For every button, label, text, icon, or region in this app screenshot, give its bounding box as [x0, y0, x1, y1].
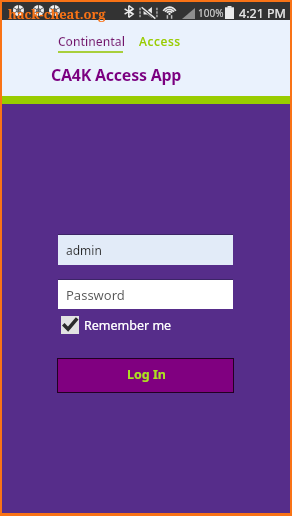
button[interactable]: Log In [57, 358, 234, 393]
staticText: Continental [58, 33, 125, 49]
staticText: Access [139, 33, 181, 49]
button[interactable]: Password [58, 280, 233, 309]
staticText: 100% [198, 6, 224, 20]
button[interactable]: Access [135, 28, 185, 54]
staticText: Log In [127, 366, 166, 383]
staticText: CA4K Access App [51, 64, 182, 86]
staticText: hack-cheat.org [8, 5, 106, 23]
staticText: Password [66, 286, 125, 304]
staticText: Remember me [84, 317, 172, 334]
button[interactable]: admin [58, 235, 233, 265]
staticText: admin [66, 242, 102, 258]
button[interactable]: Continental [54, 28, 129, 54]
button[interactable]: Remember me [61, 314, 172, 336]
staticText: 4:21 PM [239, 5, 286, 22]
